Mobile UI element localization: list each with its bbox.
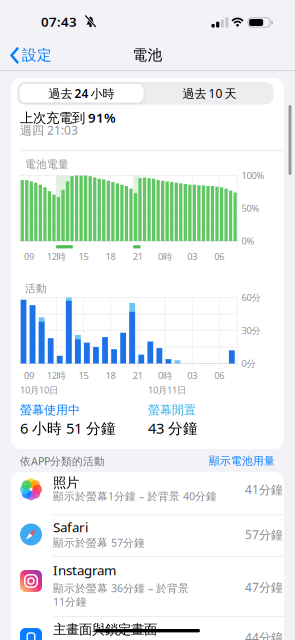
staticText: 0分 — [241, 357, 255, 370]
staticText: 07:43 — [41, 13, 77, 30]
staticText: 10月11日 — [148, 384, 186, 396]
button[interactable]: 過去 24 小時 — [19, 84, 143, 102]
staticText: 41分鐘 — [245, 481, 283, 497]
staticText: 過去 24 小時 — [48, 85, 114, 101]
staticText: 依APP分類的活動 — [20, 454, 105, 468]
staticText: 主畫面與鎖定畫面 — [53, 621, 157, 638]
staticText: 09 — [24, 369, 34, 382]
button[interactable]: Safari — [11, 515, 284, 556]
staticText: 06 — [214, 369, 224, 382]
staticText: 43 分鐘 — [148, 418, 198, 438]
staticText: 12時 — [47, 369, 66, 382]
staticText: 47分鐘 — [245, 579, 283, 595]
staticText: 顯示電池用量 — [209, 454, 275, 467]
staticText: 螢幕使用中 — [20, 403, 80, 417]
button[interactable]: Instagram — [11, 556, 284, 616]
staticText: 0時 — [158, 250, 172, 263]
staticText: 照片 — [53, 474, 79, 491]
staticText: 21 — [133, 369, 143, 382]
staticText: 活動 — [25, 282, 47, 295]
staticText: 50% — [241, 202, 259, 214]
staticText: 顯示於螢幕1分鐘 – 於背景 40分鐘 — [53, 489, 217, 503]
staticText: 電池電量 — [25, 158, 69, 171]
staticText: 設定 — [22, 46, 52, 64]
staticText: 10月10日 — [20, 384, 58, 396]
staticText: 0% — [241, 235, 254, 247]
staticText: 15 — [78, 369, 88, 382]
staticText: 30分 — [241, 324, 260, 337]
staticText: 18 — [106, 369, 116, 382]
staticText: 12時 — [47, 250, 66, 263]
button[interactable]: 設定 — [3, 40, 65, 70]
staticText: 顯示於螢幕 36分鐘 – 於背景 — [53, 581, 189, 595]
button[interactable]: 顯示電池用量 — [165, 454, 275, 467]
button[interactable]: 照片 — [11, 472, 284, 515]
button[interactable]: 主畫面與鎖定畫面 — [11, 616, 284, 640]
staticText: 過去 10 天 — [182, 85, 236, 101]
staticText: Instagram — [53, 561, 116, 579]
button[interactable]: 過去 10 天 — [147, 84, 271, 102]
staticText: 18 — [106, 250, 116, 263]
staticText: 6 小時 51 分鐘 — [20, 418, 116, 438]
staticText: 0時 — [158, 369, 172, 382]
staticText: 60分 — [241, 291, 260, 304]
staticText: 03 — [187, 369, 197, 382]
staticText: 06 — [214, 250, 224, 263]
staticText: 11分鐘 — [53, 594, 87, 609]
staticText: 21 — [133, 250, 143, 263]
staticText: 09 — [24, 250, 34, 263]
staticText: 電池 — [132, 46, 162, 64]
staticText: 15 — [78, 250, 88, 263]
staticText: 上次充電到 91% — [20, 109, 116, 126]
staticText: 螢幕閒置 — [148, 403, 196, 417]
staticText: 100% — [241, 169, 264, 182]
staticText: 週四 21:03 — [20, 122, 78, 138]
staticText: 03 — [187, 250, 197, 263]
staticText: Safari — [53, 518, 88, 536]
staticText: 57分鐘 — [245, 526, 283, 542]
staticText: 44分鐘 — [245, 629, 283, 640]
staticText: 顯示於螢幕 57分鐘 — [53, 535, 145, 550]
